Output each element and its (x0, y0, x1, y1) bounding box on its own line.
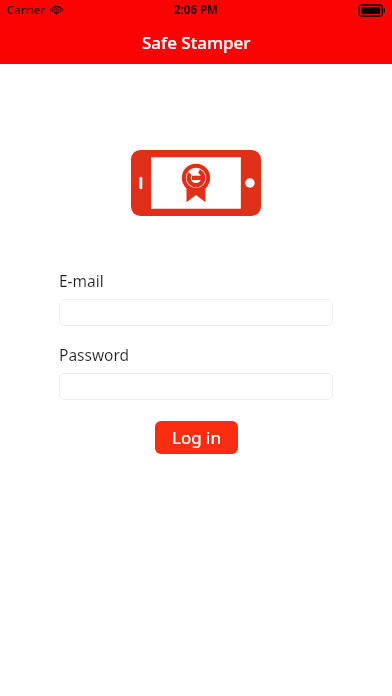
button[interactable]: Log in (155, 421, 238, 454)
button[interactable]: Password (59, 373, 333, 400)
staticText: Carrier (7, 2, 46, 18)
staticText: 2:06 PM (174, 2, 218, 18)
staticText: Password (59, 344, 130, 365)
button[interactable]: E-mail (59, 299, 333, 326)
staticText: Log in (172, 426, 221, 449)
staticText: Safe Stamper (142, 31, 251, 54)
staticText: E-mail (59, 270, 104, 291)
